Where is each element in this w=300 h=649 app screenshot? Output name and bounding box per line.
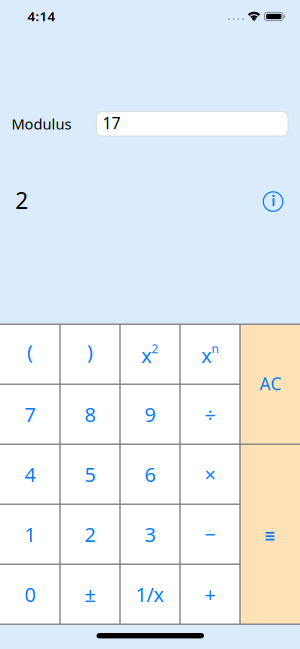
staticText: − xyxy=(204,521,215,547)
staticText: 2 xyxy=(15,185,28,215)
staticText: Modulus xyxy=(11,114,71,133)
staticText: 7 xyxy=(24,401,35,427)
staticText: ± xyxy=(84,581,95,607)
staticText: × xyxy=(204,461,215,487)
staticText: ) xyxy=(87,338,93,365)
staticText: 9 xyxy=(144,401,155,427)
staticText: ( xyxy=(27,338,33,365)
staticText: 17 xyxy=(102,112,120,133)
staticText: 4:14 xyxy=(28,7,56,25)
staticText: + xyxy=(204,581,215,607)
staticText: n xyxy=(211,341,218,356)
staticText: x xyxy=(201,342,212,369)
staticText: 1/x xyxy=(135,581,164,607)
staticText: 3 xyxy=(144,521,155,547)
staticText: 5 xyxy=(84,461,95,487)
staticText: x xyxy=(141,342,152,369)
staticText: 6 xyxy=(144,461,155,487)
staticText: 0 xyxy=(24,581,35,607)
staticText: 1 xyxy=(24,521,35,547)
staticText: AC xyxy=(259,372,281,395)
staticText: 4 xyxy=(24,461,35,487)
staticText: ÷ xyxy=(204,401,215,427)
staticText: 8 xyxy=(84,401,95,427)
staticText: 2 xyxy=(84,521,95,547)
staticText: 2 xyxy=(151,341,158,356)
